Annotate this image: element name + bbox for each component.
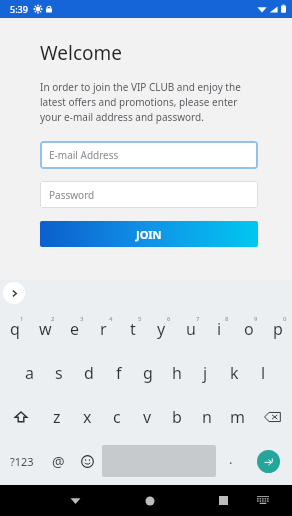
button[interactable]: Recents — [204, 485, 243, 516]
staticText: 8 — [225, 315, 229, 323]
staticText: c — [113, 406, 121, 428]
button[interactable]: d — [74, 351, 104, 395]
button[interactable]: v — [132, 395, 162, 439]
button[interactable]: Password — [40, 181, 258, 208]
button[interactable]: h — [162, 351, 191, 395]
staticText: . — [229, 450, 233, 468]
button[interactable]: Back — [56, 485, 95, 516]
button[interactable]: s — [44, 351, 74, 395]
button[interactable]: q — [0, 306, 30, 351]
button[interactable]: b — [162, 395, 192, 439]
staticText: 0 — [283, 315, 287, 323]
staticText: Password — [49, 188, 95, 202]
staticText: m — [230, 406, 245, 428]
button[interactable]: JOIN — [40, 221, 258, 247]
staticText: @ — [52, 452, 65, 471]
staticText: ?123 — [10, 454, 34, 469]
staticText: q — [10, 318, 20, 340]
staticText: k — [230, 362, 239, 384]
button[interactable]: z — [41, 395, 72, 439]
button[interactable]: y — [147, 306, 176, 351]
staticText: 2 — [51, 315, 55, 323]
staticText: z — [53, 406, 61, 428]
button[interactable]: Emoji — [73, 439, 102, 483]
staticText: g — [143, 362, 153, 384]
staticText: b — [172, 406, 182, 428]
staticText: v — [143, 406, 152, 428]
staticText: p — [273, 318, 283, 340]
button[interactable]: u — [176, 306, 205, 351]
button[interactable]: ?123 — [0, 439, 44, 483]
button[interactable]: c — [102, 395, 132, 439]
staticText: d — [84, 362, 94, 384]
button[interactable]: Home — [130, 485, 169, 516]
staticText: u — [186, 318, 196, 340]
staticText: n — [202, 406, 212, 428]
button[interactable]: m — [222, 395, 252, 439]
staticText: f — [116, 362, 122, 384]
button[interactable]: n — [192, 395, 222, 439]
staticText: i — [217, 318, 222, 340]
staticText: j — [203, 362, 208, 384]
staticText: 5:39 — [10, 3, 28, 15]
staticText: 1 — [20, 315, 24, 323]
button[interactable]: @ — [44, 439, 73, 483]
button[interactable]: p — [263, 306, 292, 351]
button[interactable]: Enter — [257, 450, 280, 473]
staticText: 4 — [109, 315, 113, 323]
button[interactable]: i — [205, 306, 234, 351]
staticText: r — [100, 318, 107, 340]
button[interactable]: . — [216, 439, 245, 483]
staticText: 3 — [80, 315, 84, 323]
staticText: t — [130, 318, 136, 340]
button[interactable]: x — [72, 395, 102, 439]
button[interactable]: g — [133, 351, 162, 395]
button[interactable]: a — [14, 351, 44, 395]
staticText: E-mail Address — [49, 148, 119, 162]
staticText: Welcome — [40, 40, 123, 66]
button[interactable]: Expand suggestions — [3, 282, 25, 304]
staticText: 5 — [138, 315, 142, 323]
button[interactable]: o — [234, 306, 263, 351]
button[interactable]: Switch keyboard — [243, 485, 282, 516]
staticText: w — [39, 318, 52, 340]
button[interactable]: E-mail Address — [40, 141, 258, 169]
button[interactable]: j — [191, 351, 220, 395]
button[interactable]: r — [89, 306, 118, 351]
staticText: In order to join the VIP CLUB and enjoy … — [40, 80, 258, 124]
staticText: 7 — [196, 315, 200, 323]
staticText: y — [157, 318, 166, 340]
button[interactable]: w — [30, 306, 60, 351]
button[interactable]: Shift — [0, 395, 41, 439]
button[interactable]: Backspace — [252, 395, 292, 439]
button[interactable]: l — [249, 351, 278, 395]
staticText: l — [261, 362, 266, 384]
staticText: e — [70, 318, 80, 340]
staticText: a — [25, 362, 34, 384]
staticText: o — [244, 318, 254, 340]
button[interactable]: k — [220, 351, 249, 395]
staticText: s — [55, 362, 63, 384]
staticText: JOIN — [136, 227, 162, 242]
button[interactable]: e — [60, 306, 89, 351]
button[interactable]: f — [104, 351, 133, 395]
button[interactable]: t — [118, 306, 147, 351]
staticText: 6 — [167, 315, 171, 323]
staticText: x — [83, 406, 92, 428]
staticText: h — [172, 362, 182, 384]
staticText: 9 — [254, 315, 258, 323]
